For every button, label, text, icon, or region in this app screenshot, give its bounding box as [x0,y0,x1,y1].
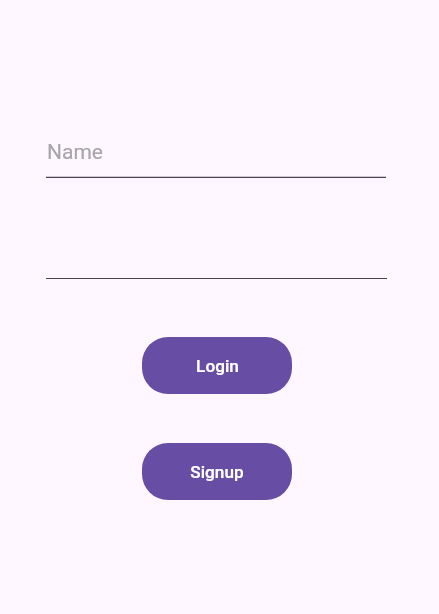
button[interactable]: Signup [142,443,292,500]
button[interactable] [46,232,387,280]
button[interactable]: Name [46,131,386,179]
button[interactable]: Login [142,337,292,394]
staticText: Login [196,356,239,376]
staticText: Name [47,140,103,165]
staticText: Signup [190,462,244,482]
